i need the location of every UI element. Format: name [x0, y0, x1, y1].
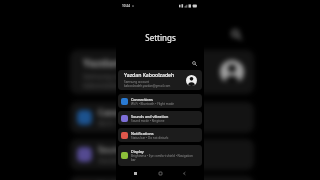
staticText: kaboolzadeh.yazdan@gmail.com — [83, 81, 185, 90]
button[interactable]: Display — [118, 145, 202, 166]
staticText: Yazdan Kaboolzadeh — [124, 72, 175, 79]
staticText: Status bar • Do not disturb — [131, 136, 169, 140]
staticText: bar — [131, 158, 136, 162]
staticText: Samsung account — [124, 80, 150, 84]
staticText: Sounds and vibration — [98, 144, 181, 155]
staticText: 10:24 — [122, 4, 131, 8]
button[interactable]: Search — [225, 23, 247, 45]
button[interactable]: Connections — [70, 102, 254, 133]
button[interactable]: Connections — [118, 94, 202, 108]
staticText: Brightness • Eye comfort shield • Naviga… — [131, 154, 193, 158]
staticText: Sound mode • Ringtone — [131, 119, 165, 123]
staticText: kaboolzadeh.yazdan@gmail.com — [124, 84, 171, 88]
staticText: Sounds and vibration — [131, 114, 169, 119]
button[interactable]: Yazdan Kaboolzadeh — [118, 70, 202, 90]
staticText: Wi-Fi • Bluetooth • Flight mode — [131, 102, 174, 106]
staticText: Connections — [131, 97, 153, 102]
button[interactable]: Notifications — [118, 128, 202, 142]
staticText: Connections — [98, 107, 147, 118]
staticText: Sound mode • Ringtone — [98, 156, 172, 165]
button[interactable]: Notifications — [70, 176, 254, 180]
button[interactable]: Sounds and vibration — [118, 111, 202, 125]
staticText: Display — [131, 149, 144, 154]
button[interactable]: Back — [180, 169, 189, 178]
staticText: Settings — [145, 32, 176, 43]
button[interactable]: Search — [189, 58, 199, 68]
staticText: Notifications — [131, 131, 154, 136]
staticText: Yazdan Kaboolzadeh — [83, 55, 194, 70]
button[interactable]: Recent apps — [131, 169, 140, 178]
button[interactable]: Sounds and vibration — [70, 139, 254, 170]
button[interactable]: Home — [156, 169, 165, 178]
staticText: Wi-Fi • Bluetooth • Flight mode — [98, 119, 193, 128]
button[interactable]: Yazdan Kaboolzadeh — [70, 50, 254, 94]
staticText: Samsung account — [83, 72, 139, 81]
